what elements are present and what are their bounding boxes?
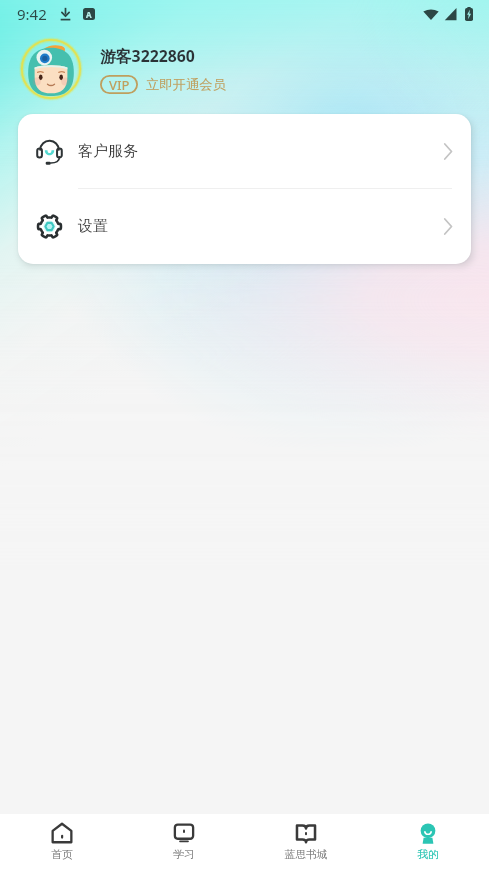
button[interactable]: VIP: [100, 75, 226, 94]
staticText: 我的: [417, 848, 439, 862]
staticText: A: [86, 9, 92, 20]
button[interactable]: 我的: [367, 814, 489, 869]
staticText: 9:42: [17, 4, 47, 24]
staticText: 立即开通会员: [146, 76, 226, 93]
staticText: 客户服务: [78, 142, 138, 161]
button[interactable]: 设置: [18, 189, 471, 263]
button[interactable]: 客户服务: [18, 114, 471, 188]
button[interactable]: 蓝思书城: [245, 814, 367, 869]
staticText: 蓝思书城: [284, 848, 328, 862]
staticText: VIP: [109, 76, 130, 94]
button[interactable]: 学习: [123, 814, 245, 869]
staticText: 学习: [173, 848, 195, 862]
button[interactable]: 首页: [0, 814, 123, 869]
staticText: 设置: [78, 217, 108, 236]
staticText: 游客3222860: [100, 45, 195, 67]
staticText: 首页: [51, 848, 73, 862]
